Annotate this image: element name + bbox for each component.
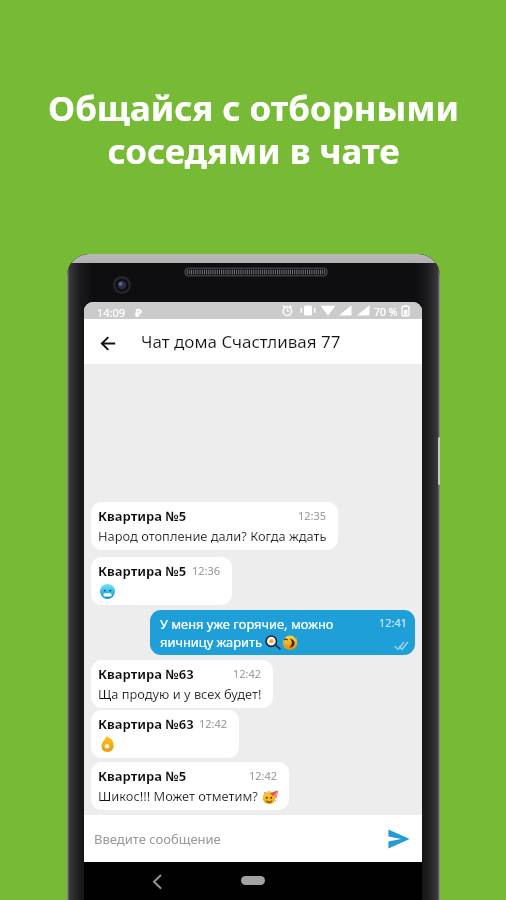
staticText: Квартира №5 (98, 562, 187, 580)
staticText: Ща продую и у всех будет! (98, 685, 262, 703)
staticText: Квартира №5 (98, 507, 187, 525)
staticText: Квартира №63 (98, 665, 194, 683)
staticText: яичницу жарить (160, 633, 262, 651)
staticText: Народ отопление дали? Когда ждать (98, 527, 327, 545)
staticText: 12:42 (233, 666, 262, 681)
staticText: Квартира №63 (98, 715, 194, 733)
button[interactable]: Квартира №5 (91, 762, 289, 810)
button[interactable]: Квартира №5 (91, 557, 232, 605)
button[interactable]: Квартира №63 (91, 710, 239, 758)
staticText: 12:35 (298, 508, 327, 523)
staticText: 70 % (374, 305, 398, 319)
staticText: 12:36 (192, 563, 221, 578)
staticText: 14:09 (97, 305, 126, 320)
staticText: Шикос!!! Может отметим? (98, 787, 258, 805)
staticText: У меня уже горячие, можно (160, 615, 334, 633)
button[interactable]: У меня уже горячие, можно (150, 610, 415, 655)
staticText: Общайся с отборными соседями в чате (48, 84, 459, 174)
staticText: 12:42 (249, 768, 278, 783)
staticText: Чат дома Счастливая 77 (141, 330, 341, 353)
button[interactable]: Квартира №5 (91, 502, 338, 550)
staticText: Введите сообщение (94, 830, 221, 848)
staticText: 12:41 (379, 615, 408, 630)
staticText: Квартира №5 (98, 767, 187, 785)
button[interactable]: Квартира №63 (91, 660, 273, 708)
button[interactable]: Back (84, 319, 133, 364)
staticText: 12:42 (199, 716, 228, 731)
staticText: ₽ (135, 305, 142, 320)
button[interactable]: Send (382, 822, 416, 856)
